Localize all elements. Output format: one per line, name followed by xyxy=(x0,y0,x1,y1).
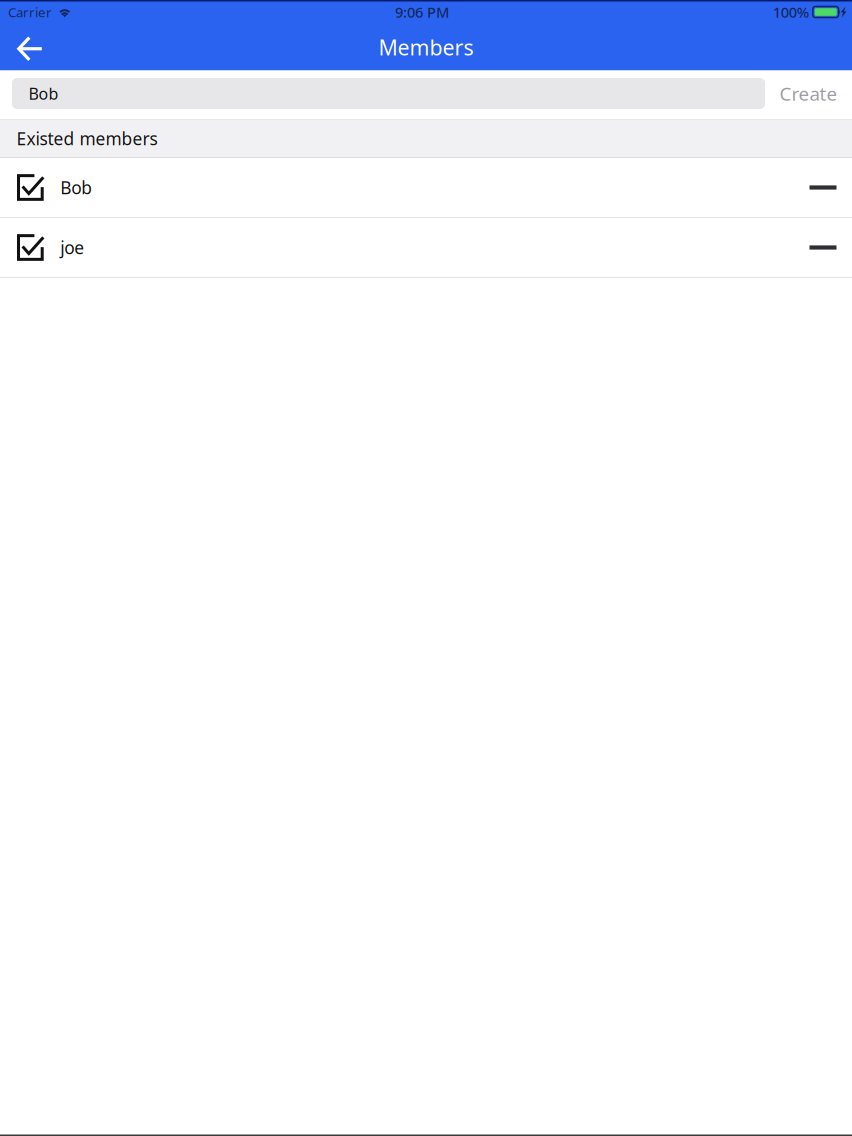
button[interactable]: Bob xyxy=(0,158,794,217)
staticText: Bob xyxy=(28,83,58,104)
staticText: Existed members xyxy=(16,127,157,150)
button[interactable]: Remove Bob xyxy=(794,158,852,217)
staticText: joe xyxy=(60,236,84,259)
button[interactable]: Back xyxy=(0,24,60,70)
staticText: 100% xyxy=(773,2,809,22)
button[interactable]: joe xyxy=(0,218,794,277)
button[interactable]: Create xyxy=(765,78,852,109)
button[interactable]: Bob xyxy=(12,78,765,109)
button[interactable]: Remove joe xyxy=(794,218,852,277)
staticText: Carrier xyxy=(8,3,52,21)
staticText: Create xyxy=(779,81,837,106)
staticText: 9:06 PM xyxy=(395,2,449,22)
staticText: Bob xyxy=(60,176,92,199)
staticText: Members xyxy=(378,33,473,61)
